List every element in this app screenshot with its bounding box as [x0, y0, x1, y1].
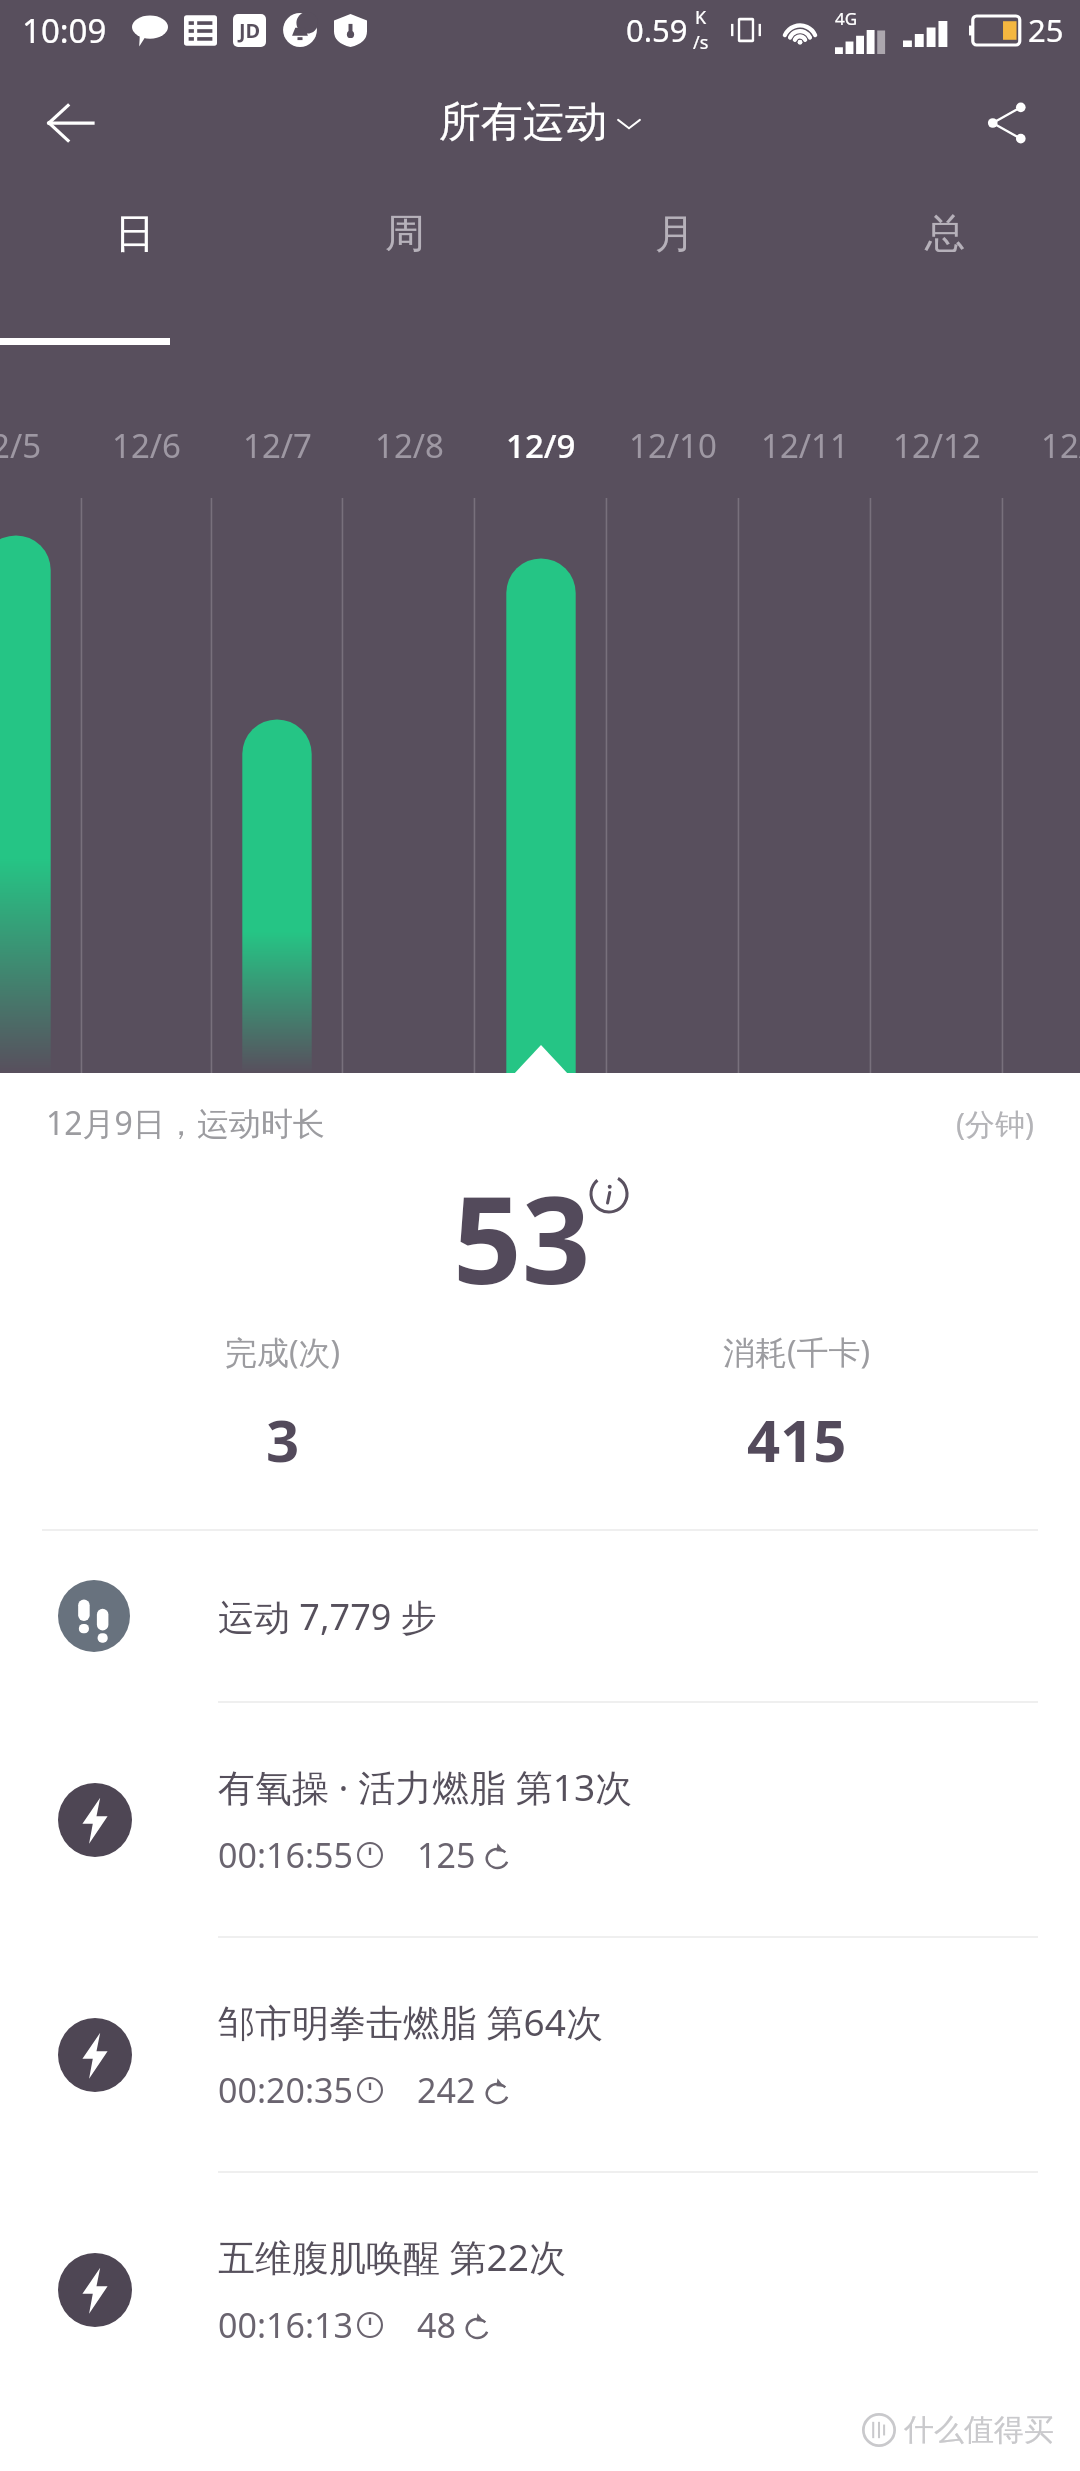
staticText: 月	[655, 208, 695, 258]
button[interactable]: 总	[810, 190, 1080, 340]
staticText: JD	[239, 17, 261, 44]
staticText: 12/9	[506, 423, 576, 468]
button[interactable]: 运动 7,779 步	[0, 1531, 1080, 1701]
staticText: 242	[417, 2067, 476, 2113]
button[interactable]: 五维腹肌唤醒 第22次	[0, 2173, 1080, 2406]
staticText: 415	[747, 1400, 847, 1479]
staticText: 完成(次)	[225, 1330, 341, 1374]
staticText: 邹市明拳击燃脂 第64次	[218, 1996, 603, 2047]
button[interactable]: 所有运动	[431, 88, 650, 157]
staticText: 什么值得买	[904, 2411, 1054, 2449]
button[interactable]: Share	[962, 78, 1052, 168]
button[interactable]: 邹市明拳击燃脂 第64次	[0, 1938, 1080, 2171]
staticText: 总	[925, 208, 965, 258]
staticText: 53	[453, 1156, 591, 1319]
staticText: 12/11	[761, 423, 849, 468]
button[interactable]: Info	[591, 1176, 627, 1212]
staticText: 12月9日，运动时长	[46, 1101, 325, 1145]
staticText: 0.59	[626, 9, 688, 51]
staticText: 12/7	[243, 423, 312, 468]
staticText: 所有运动	[439, 96, 607, 149]
staticText: 12/12	[893, 423, 981, 468]
staticText: 12/8	[375, 423, 444, 468]
staticText: 00:16:13	[218, 2302, 353, 2348]
staticText: 12/10	[629, 423, 717, 468]
staticText: 五维腹肌唤醒 第22次	[218, 2231, 566, 2282]
staticText: 25	[1028, 9, 1064, 51]
staticText: 12/6	[112, 423, 181, 468]
staticText: 4G	[835, 7, 858, 30]
staticText: 2/5	[0, 423, 42, 468]
button[interactable]: 日	[0, 190, 270, 340]
staticText: /s	[693, 30, 709, 55]
button[interactable]: 周	[270, 190, 540, 340]
staticText: 00:20:35	[218, 2067, 353, 2113]
button[interactable]: 有氧操 · 活力燃脂 第13次	[0, 1703, 1080, 1936]
staticText: 00:16:55	[218, 1832, 353, 1878]
staticText: 日	[115, 208, 155, 258]
staticText: 有氧操 · 活力燃脂 第13次	[218, 1761, 633, 1812]
staticText: 3	[266, 1400, 300, 1479]
staticText: 运动 7,779 步	[218, 1592, 437, 1641]
staticText: 消耗(千卡)	[723, 1330, 871, 1374]
staticText: 125	[417, 1832, 476, 1878]
staticText: (分钟)	[956, 1103, 1034, 1144]
staticText: 48	[417, 2302, 456, 2348]
button[interactable]: Back	[26, 78, 116, 168]
button[interactable]: 月	[540, 190, 810, 340]
staticText: 10:09	[22, 8, 107, 53]
staticText: 12/	[1041, 423, 1080, 468]
staticText: 周	[385, 208, 425, 258]
staticText: K	[695, 5, 707, 30]
